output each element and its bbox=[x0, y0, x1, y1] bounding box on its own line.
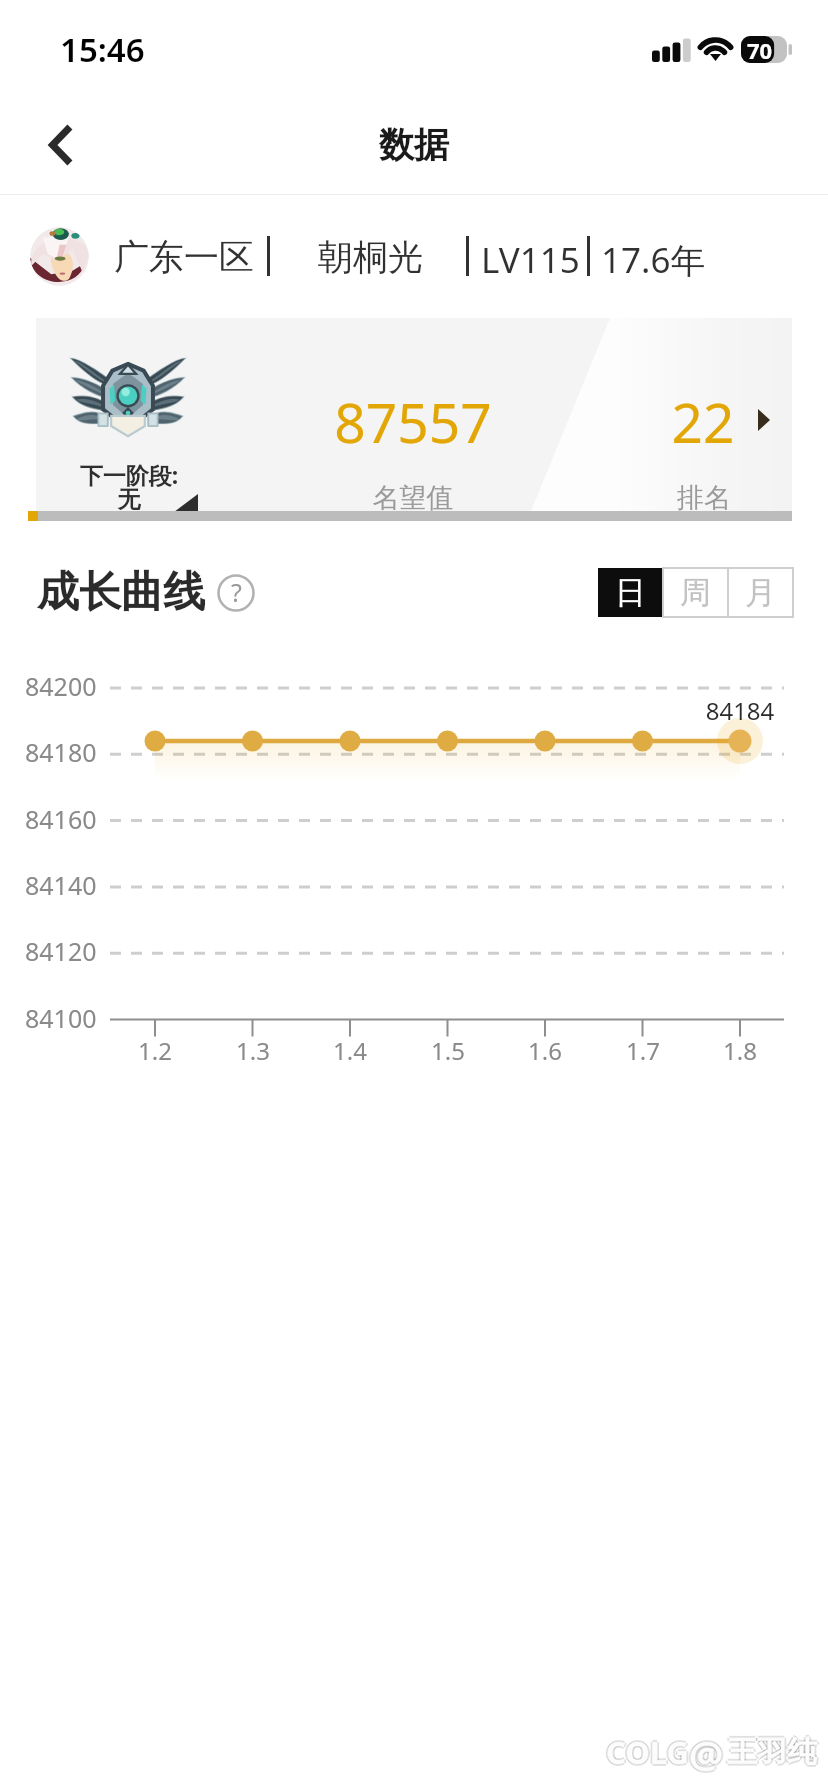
staticText: 84200 bbox=[25, 669, 97, 703]
staticText: 1.3 bbox=[213, 1034, 293, 1067]
staticText: LV115 bbox=[481, 236, 580, 284]
staticText: 排名 bbox=[624, 481, 784, 515]
staticText: 1.8 bbox=[700, 1034, 780, 1067]
staticText: @ bbox=[689, 1730, 724, 1782]
staticText: 王羽纯 bbox=[727, 1731, 817, 1769]
button[interactable]: 月 bbox=[728, 568, 793, 617]
staticText: COLG bbox=[606, 1729, 689, 1771]
staticText: 王羽纯 bbox=[729, 1733, 819, 1771]
staticText: 84140 bbox=[25, 868, 97, 902]
staticText: @ bbox=[689, 1728, 724, 1780]
staticText: 日 bbox=[615, 573, 646, 612]
staticText: COLG bbox=[606, 1731, 689, 1773]
staticText: COLG bbox=[606, 1733, 689, 1775]
staticText: 月 bbox=[745, 573, 776, 612]
button[interactable]: 87557 bbox=[226, 318, 600, 511]
staticText: 70 bbox=[747, 35, 773, 62]
staticText: @ bbox=[689, 1726, 724, 1778]
staticText: 22 bbox=[623, 384, 783, 459]
staticText: 王羽纯 bbox=[727, 1735, 817, 1773]
staticText: 1.7 bbox=[603, 1034, 683, 1067]
staticText: 下一阶段: bbox=[69, 459, 189, 490]
staticText: 84160 bbox=[25, 802, 97, 836]
staticText: 名望值 bbox=[313, 481, 513, 515]
button[interactable]: Back bbox=[15, 96, 105, 194]
staticText: @ bbox=[687, 1728, 722, 1780]
staticText: 周 bbox=[680, 573, 711, 612]
staticText: 87557 bbox=[253, 384, 573, 459]
staticText: 84120 bbox=[25, 934, 97, 968]
staticText: 17.6年 bbox=[601, 236, 706, 284]
button[interactable]: 广东一区 bbox=[0, 195, 828, 318]
staticText: 数据 bbox=[379, 123, 449, 167]
staticText: 成长曲线 bbox=[37, 566, 205, 619]
button[interactable]: Help bbox=[213, 570, 259, 616]
staticText: @ bbox=[691, 1728, 726, 1780]
staticText: 84184 bbox=[700, 694, 780, 727]
button[interactable]: 下一阶段: bbox=[36, 318, 222, 511]
staticText: 1.2 bbox=[115, 1034, 195, 1067]
staticText: 1.5 bbox=[408, 1034, 488, 1067]
staticText: 朝桐光 bbox=[318, 235, 423, 279]
staticText: 1.4 bbox=[310, 1034, 390, 1067]
staticText: 无 bbox=[69, 485, 189, 514]
other: View ranking bbox=[758, 409, 770, 431]
staticText: 王羽纯 bbox=[727, 1733, 817, 1771]
staticText: 15:46 bbox=[60, 27, 145, 72]
staticText: 84180 bbox=[25, 735, 97, 769]
staticText: 广东一区 bbox=[114, 235, 254, 279]
staticText: COLG bbox=[604, 1731, 687, 1773]
staticText: ? bbox=[231, 575, 242, 609]
staticText: 王羽纯 bbox=[725, 1733, 815, 1771]
button[interactable]: 周 bbox=[663, 568, 728, 617]
button[interactable]: 日 bbox=[598, 568, 663, 617]
staticText: COLG bbox=[608, 1731, 691, 1773]
button[interactable]: 22 bbox=[606, 318, 792, 511]
staticText: 84100 bbox=[25, 1001, 97, 1035]
staticText: 1.6 bbox=[505, 1034, 585, 1067]
